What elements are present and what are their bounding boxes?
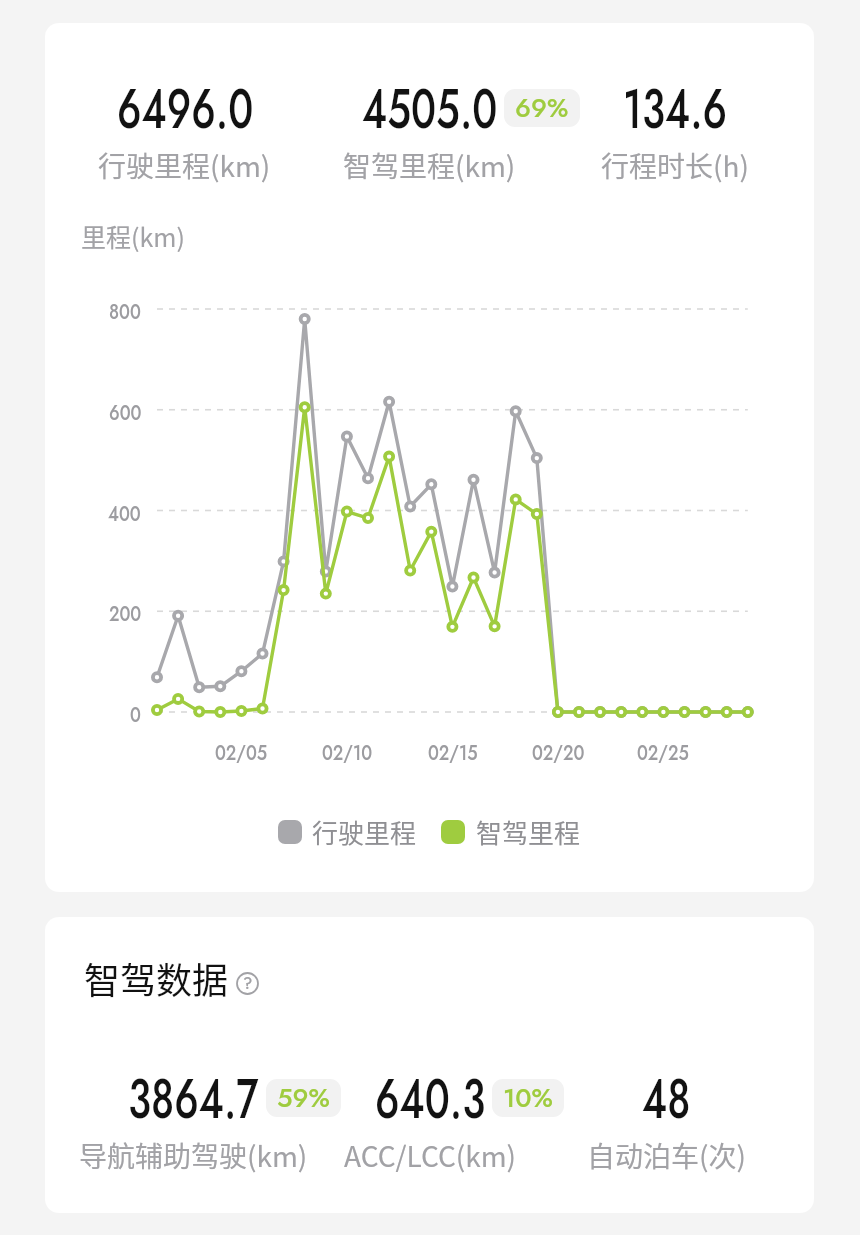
staticText: 640.3 (375, 1059, 486, 1138)
staticText: 02/20 (532, 736, 585, 768)
staticText: 里程(km) (81, 218, 185, 254)
staticText: 智驾数据 (84, 952, 229, 1004)
staticText: 行驶里程(km) (98, 145, 271, 186)
other: Help (236, 972, 259, 995)
staticText: 10% (503, 1079, 553, 1117)
staticText: 134.6 (623, 69, 728, 148)
staticText: 69% (515, 89, 569, 127)
staticText: 48 (642, 1059, 691, 1138)
staticText: 400 (108, 497, 141, 529)
staticText: 4505.0 (362, 69, 497, 148)
staticText: 0 (130, 698, 141, 730)
staticText: 导航辅助驾驶(km) (79, 1135, 308, 1176)
staticText: 600 (109, 396, 141, 428)
staticText: 6496.0 (117, 69, 254, 148)
staticText: 02/25 (637, 736, 689, 768)
staticText: ACC/LCC(km) (344, 1135, 517, 1176)
button[interactable]: 智驾数据 (84, 952, 259, 1004)
staticText: 3864.7 (128, 1059, 259, 1138)
staticText: 自动泊车(次) (587, 1135, 746, 1176)
staticText: 行程时长(h) (601, 145, 749, 186)
staticText: 59% (277, 1079, 330, 1117)
staticText: 02/10 (322, 736, 373, 768)
staticText: ? (243, 972, 253, 995)
staticText: 智驾里程(km) (343, 145, 516, 186)
staticText: 行驶里程 (312, 813, 417, 851)
staticText: 02/05 (215, 736, 268, 768)
staticText: 智驾里程 (476, 813, 581, 851)
staticText: 02/15 (428, 736, 478, 768)
staticText: 200 (109, 597, 141, 629)
staticText: 800 (109, 295, 141, 327)
